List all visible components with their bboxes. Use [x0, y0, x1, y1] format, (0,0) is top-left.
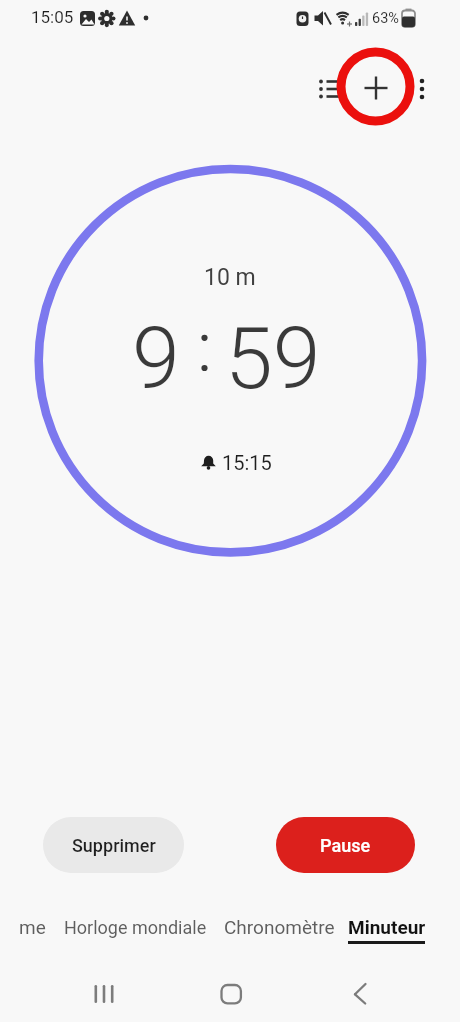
button[interactable] — [354, 66, 398, 110]
staticText: Chronomètre — [224, 916, 335, 938]
button[interactable] — [306, 75, 350, 103]
staticText: Supprimer — [72, 835, 156, 856]
button[interactable]: me — [0, 913, 46, 941]
button[interactable]: Horloge mondiale — [50, 913, 220, 941]
button[interactable] — [209, 972, 253, 1016]
button[interactable]: Minuteur — [344, 913, 429, 941]
staticText: me — [19, 916, 46, 938]
staticText: Horloge mondiale — [64, 917, 207, 938]
staticText: 59 — [225, 308, 321, 409]
button[interactable] — [81, 972, 125, 1016]
staticText: 9 — [132, 308, 180, 409]
button[interactable]: Chronomètre — [223, 913, 335, 941]
button[interactable]: Pause — [276, 817, 415, 873]
button[interactable] — [406, 70, 438, 106]
staticText: Pause — [320, 835, 371, 856]
staticText: 15:15 — [222, 451, 272, 474]
button[interactable]: Supprimer — [43, 817, 184, 873]
staticText: 10 m — [204, 264, 256, 291]
staticText: 15:05 — [31, 7, 74, 27]
staticText: 63% — [372, 10, 399, 27]
button[interactable] — [338, 972, 382, 1016]
staticText: Minuteur — [348, 916, 426, 938]
